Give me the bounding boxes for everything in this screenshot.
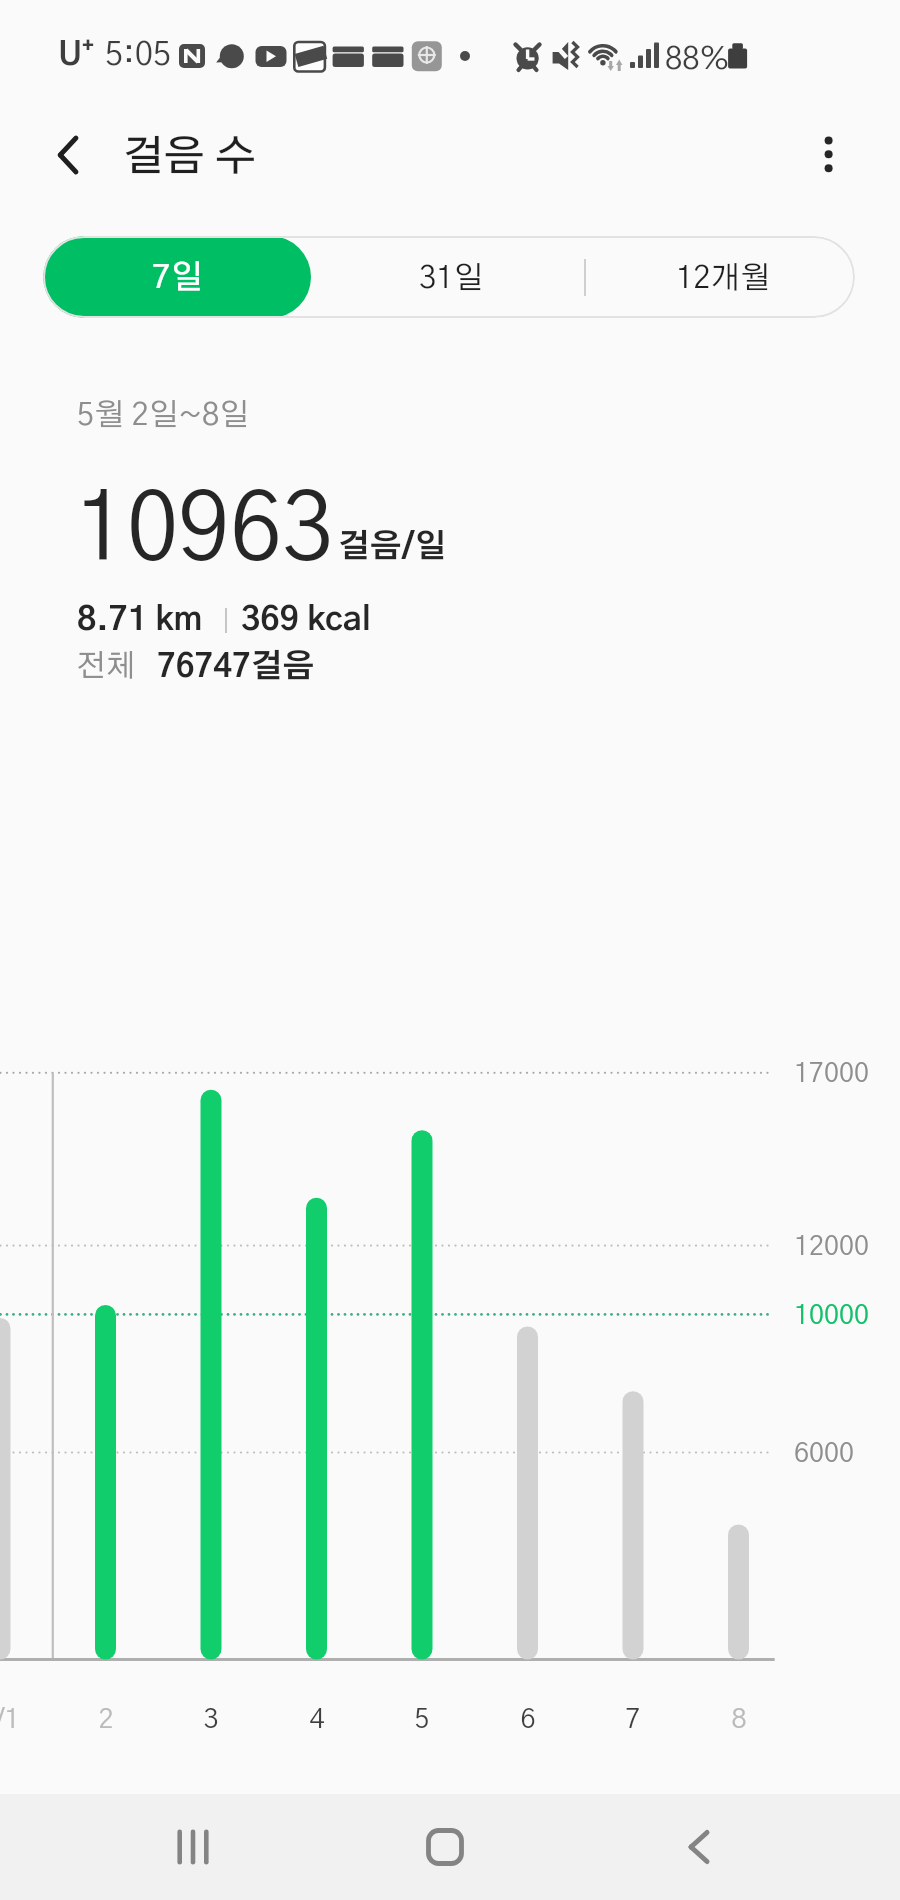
- staticText: 10000: [794, 1302, 870, 1329]
- staticText: 12개월: [676, 263, 771, 294]
- staticText: 8: [731, 1706, 747, 1733]
- staticText: 5:05: [105, 39, 172, 72]
- staticText: 5: [414, 1706, 430, 1733]
- staticText: U⁺: [58, 39, 94, 72]
- button[interactable]: Home: [385, 1794, 505, 1900]
- staticText: 8.71 km: [77, 604, 203, 637]
- button[interactable]: Back: [35, 125, 95, 185]
- staticText: 10963: [75, 485, 334, 578]
- staticText: 6000: [794, 1440, 855, 1467]
- button[interactable]: 31일: [311, 236, 583, 318]
- staticText: 17000: [794, 1060, 870, 1087]
- staticText: 88%: [665, 44, 730, 75]
- button[interactable]: Back: [637, 1794, 757, 1900]
- staticText: 6: [520, 1706, 536, 1733]
- staticText: 31일: [419, 263, 484, 294]
- staticText: 전체: [76, 651, 136, 682]
- staticText: 7: [625, 1706, 641, 1733]
- button[interactable]: Recent apps: [133, 1794, 253, 1900]
- staticText: 369 kcal: [241, 604, 372, 637]
- staticText: 걸음 수: [123, 136, 256, 178]
- button[interactable]: 7일: [43, 236, 311, 318]
- button[interactable]: More options: [798, 125, 858, 185]
- staticText: 4: [309, 1706, 325, 1733]
- staticText: 걸음/일: [338, 531, 447, 563]
- staticText: 5월 2일~8일: [77, 400, 250, 431]
- staticText: 5/1: [0, 1706, 20, 1733]
- staticText: 2: [98, 1706, 114, 1733]
- staticText: 76747걸음: [157, 651, 315, 683]
- button[interactable]: 12개월: [583, 236, 855, 318]
- staticText: 3: [203, 1706, 219, 1733]
- staticText: 12000: [794, 1233, 870, 1260]
- staticText: 7일: [152, 262, 203, 295]
